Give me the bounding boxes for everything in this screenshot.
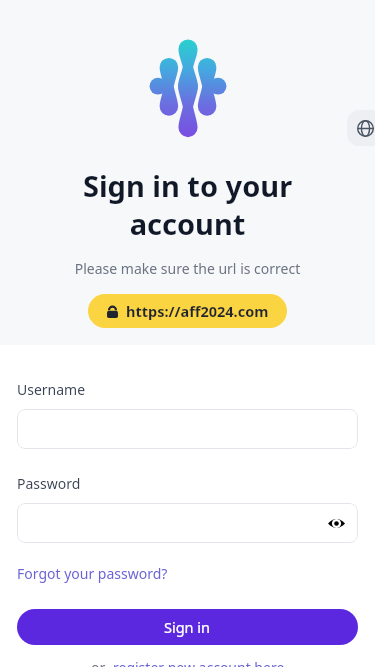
button[interactable] [17, 409, 358, 449]
staticText: or [91, 658, 106, 667]
staticText: Sign in to your account [34, 166, 341, 243]
staticText: Please make sure the url is correct [0, 259, 375, 278]
button[interactable]: Sign in [17, 609, 358, 645]
staticText: https://aff2024.com [126, 301, 269, 321]
button[interactable]: register new account here [113, 658, 285, 667]
button[interactable]: Show password [17, 503, 358, 543]
staticText: register new account here [113, 658, 285, 667]
button[interactable]: Show password [323, 510, 349, 536]
button[interactable]: Change language [347, 110, 375, 146]
staticText: Password [17, 474, 81, 493]
staticText: Username [17, 380, 86, 399]
staticText: Forgot your password? [17, 564, 168, 583]
button[interactable]: Forgot your password? [17, 564, 168, 583]
staticText: Sign in [164, 617, 211, 637]
button[interactable]: https://aff2024.com [88, 294, 287, 328]
